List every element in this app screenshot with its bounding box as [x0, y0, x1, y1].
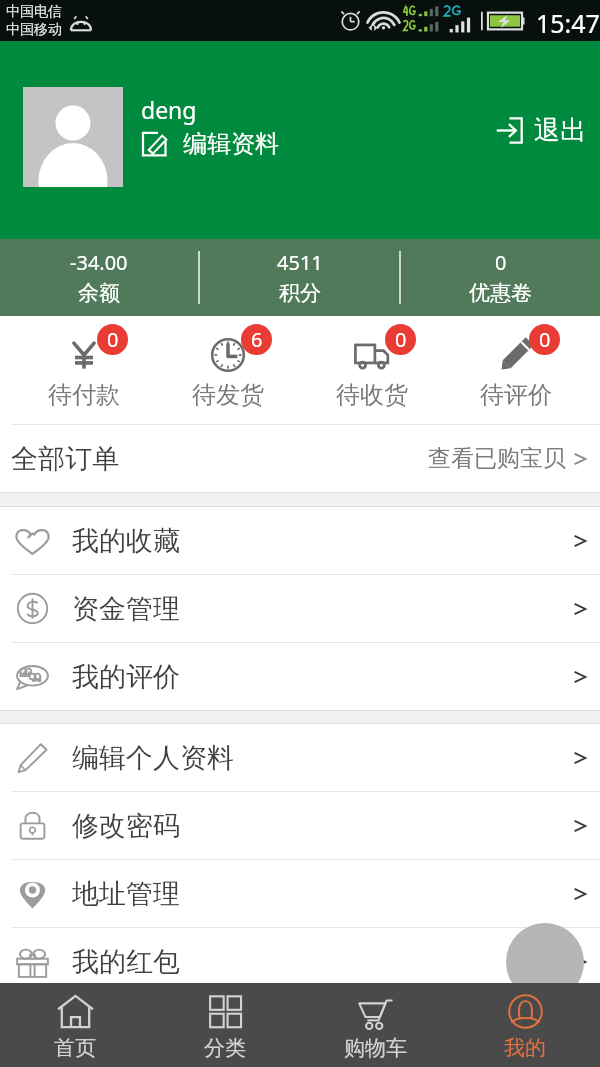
staticText: 待评价: [480, 380, 552, 410]
staticText: 查看已购宝贝: [428, 444, 566, 473]
staticText: 待收货: [336, 380, 408, 410]
button[interactable]: 资金管理: [0, 575, 600, 642]
button[interactable]: 全部订单: [0, 425, 600, 492]
button[interactable]: 地址管理: [0, 860, 600, 927]
button[interactable]: 分类: [150, 983, 300, 1067]
staticText: 0: [395, 326, 407, 353]
button[interactable]: 4511: [200, 239, 399, 316]
staticText: 中国移动: [6, 21, 62, 39]
button[interactable]: 购物车: [300, 983, 450, 1067]
staticText: 0: [107, 326, 119, 353]
staticText: 优惠卷: [469, 280, 532, 306]
staticText: 余额: [78, 280, 120, 306]
staticText: 资金管理: [72, 592, 180, 626]
button[interactable]: 退出: [495, 114, 586, 147]
button[interactable]: 我的红包: [0, 928, 600, 995]
button[interactable]: 0: [300, 319, 444, 427]
staticText: 4511: [277, 249, 323, 276]
button[interactable]: 修改密码: [0, 792, 600, 859]
staticText: deng: [141, 94, 197, 125]
staticText: 我的红包: [72, 945, 180, 979]
button[interactable]: 0: [12, 319, 156, 427]
staticText: 地址管理: [72, 877, 180, 911]
staticText: 中国电信: [6, 3, 62, 21]
staticText: 0: [495, 249, 507, 276]
staticText: -34.00: [70, 249, 128, 276]
other: 编辑资料: [140, 129, 170, 159]
staticText: 待付款: [48, 380, 120, 410]
staticText: 我的收藏: [72, 524, 180, 558]
staticText: 购物车: [344, 1035, 407, 1061]
button[interactable]: 我的评价: [0, 643, 600, 710]
button[interactable]: 我的收藏: [0, 507, 600, 574]
staticText: 积分: [279, 280, 321, 306]
staticText: 0: [539, 326, 551, 353]
staticText: 我的评价: [72, 660, 180, 694]
button[interactable]: 编辑个人资料: [0, 724, 600, 791]
staticText: 待发货: [192, 380, 264, 410]
staticText: 编辑个人资料: [72, 741, 234, 775]
staticText: 首页: [54, 1035, 96, 1061]
staticText: 分类: [204, 1035, 246, 1061]
staticText: 编辑资料: [183, 129, 279, 159]
button[interactable]: -34.00: [0, 239, 198, 316]
staticText: 我的: [504, 1035, 546, 1061]
staticText: 全部订单: [11, 442, 119, 476]
other: 退出: [495, 116, 524, 145]
button[interactable]: 首页: [0, 983, 150, 1067]
button[interactable]: 编辑资料: [140, 129, 279, 159]
staticText: 6: [251, 326, 263, 353]
staticText: 15:47: [536, 6, 600, 40]
staticText: 退出: [534, 114, 586, 147]
button[interactable]: 我的: [450, 983, 600, 1067]
button[interactable]: 6: [156, 319, 300, 427]
button[interactable]: 0: [444, 319, 588, 427]
button[interactable]: 0: [401, 239, 600, 316]
staticText: 修改密码: [72, 809, 180, 843]
